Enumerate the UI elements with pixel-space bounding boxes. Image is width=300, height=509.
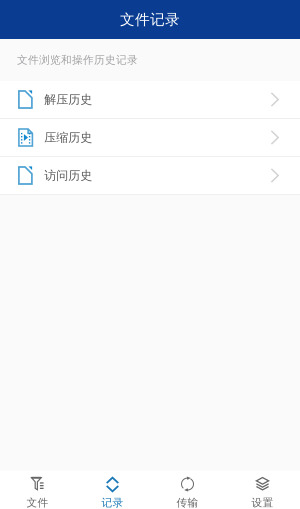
button[interactable]: 文件 xyxy=(0,471,75,509)
button[interactable]: 解压历史 xyxy=(0,81,300,119)
staticText: 压缩历史 xyxy=(44,130,92,145)
button[interactable]: 记录 xyxy=(75,471,150,509)
button[interactable]: 传输 xyxy=(150,471,225,509)
staticText: 文件记录 xyxy=(120,10,180,28)
staticText: 设置 xyxy=(251,496,273,509)
staticText: 记录 xyxy=(101,496,123,509)
staticText: 访问历史 xyxy=(44,168,92,183)
staticText: 解压历史 xyxy=(44,92,92,107)
staticText: 传输 xyxy=(176,496,198,509)
button[interactable]: 压缩历史 xyxy=(0,119,300,157)
staticText: 文件浏览和操作历史记录 xyxy=(17,53,138,66)
button[interactable]: 访问历史 xyxy=(0,157,300,195)
button[interactable]: 设置 xyxy=(225,471,300,509)
staticText: 文件 xyxy=(26,496,48,509)
